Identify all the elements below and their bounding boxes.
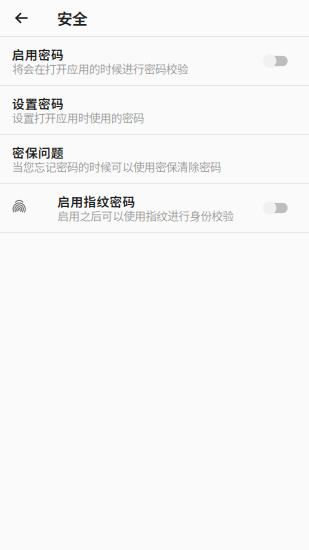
button[interactable]: 密保问题 bbox=[0, 135, 309, 183]
staticText: 安全 bbox=[57, 7, 87, 29]
button[interactable]: 启用密码 bbox=[0, 37, 309, 85]
staticText: 启用之后可以使用指纹进行身份校验 bbox=[57, 209, 233, 222]
staticText: 将会在打开应用的时候进行密码校验 bbox=[12, 62, 188, 75]
staticText: 设置密码 bbox=[12, 96, 64, 111]
staticText: 启用指纹密码 bbox=[57, 194, 135, 209]
button[interactable]: 设置密码 bbox=[0, 86, 309, 134]
button[interactable]: Back bbox=[7, 3, 36, 32]
staticText: 启用密码 bbox=[12, 47, 64, 62]
staticText: 密保问题 bbox=[12, 145, 64, 160]
button[interactable]: 启用指纹密码 bbox=[0, 184, 309, 232]
staticText: 设置打开应用时使用的密码 bbox=[12, 111, 144, 124]
staticText: 当您忘记密码的时候可以使用密保清除密码 bbox=[12, 160, 221, 173]
